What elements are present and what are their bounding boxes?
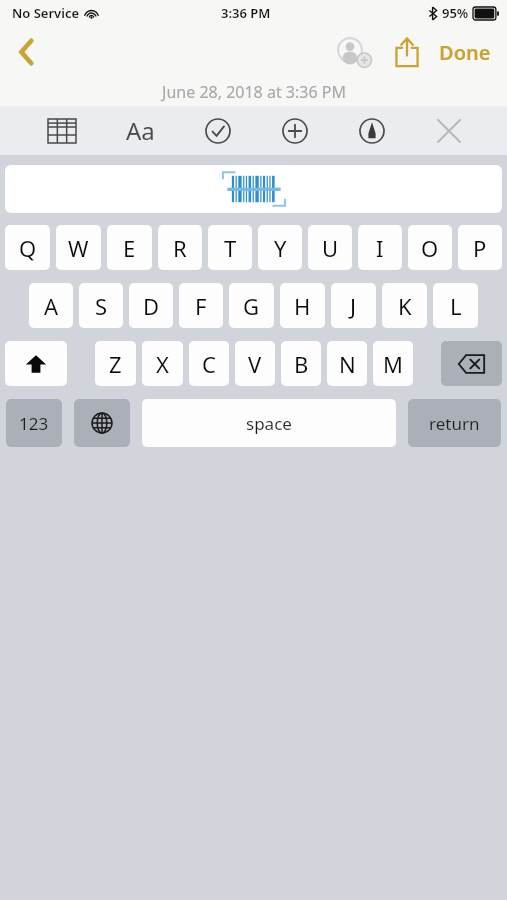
button[interactable]: O xyxy=(408,225,452,270)
button[interactable]: Y xyxy=(258,225,302,270)
button[interactable]: F xyxy=(179,283,223,328)
staticText: N xyxy=(339,349,356,379)
staticText: X xyxy=(156,349,169,379)
button[interactable]: B xyxy=(281,341,321,386)
button[interactable]: W xyxy=(56,225,101,270)
staticText: M xyxy=(383,349,403,379)
staticText: I xyxy=(376,233,384,263)
staticText: 123 xyxy=(19,412,49,435)
button[interactable]: Checklist xyxy=(196,106,240,155)
button[interactable]: Add People xyxy=(329,26,381,78)
button[interactable]: I xyxy=(358,225,402,270)
staticText: Q xyxy=(19,233,37,263)
button[interactable]: H xyxy=(280,283,325,328)
button[interactable]: Switch keyboard xyxy=(74,399,130,447)
staticText: Done xyxy=(439,39,491,66)
button[interactable]: T xyxy=(208,225,252,270)
button[interactable]: Text format xyxy=(118,106,162,155)
button[interactable]: C xyxy=(189,341,229,386)
staticText: G xyxy=(243,291,260,321)
staticText: Aa xyxy=(126,114,155,147)
button[interactable]: Numbers xyxy=(6,399,62,447)
staticText: B xyxy=(294,349,309,379)
staticText: R xyxy=(173,233,187,263)
staticText: A xyxy=(44,291,59,321)
button[interactable]: E xyxy=(107,225,152,270)
staticText: 3:36 PM xyxy=(221,4,271,22)
staticText: Y xyxy=(274,233,287,263)
button[interactable]: Done xyxy=(433,26,507,78)
staticText: No Service xyxy=(12,4,80,22)
button[interactable]: P xyxy=(458,225,502,270)
staticText: space xyxy=(246,412,292,435)
staticText: C xyxy=(202,349,216,379)
button[interactable]: G xyxy=(229,283,274,328)
staticText: K xyxy=(398,291,412,321)
staticText: W xyxy=(68,233,89,263)
staticText: return xyxy=(429,412,480,435)
staticText: H xyxy=(294,291,311,321)
button[interactable]: Q xyxy=(5,225,50,270)
staticText: U xyxy=(322,233,339,263)
staticText: O xyxy=(421,233,439,263)
button[interactable]: space xyxy=(142,399,396,447)
staticText: S xyxy=(95,291,108,321)
button[interactable]: L xyxy=(433,283,478,328)
staticText: T xyxy=(224,233,237,263)
button[interactable]: S xyxy=(79,283,123,328)
button[interactable]: Share xyxy=(381,26,433,78)
button[interactable]: Add attachment xyxy=(273,106,317,155)
button[interactable]: A xyxy=(29,283,73,328)
staticText: P xyxy=(473,233,487,263)
button[interactable]: Scan barcode xyxy=(5,165,502,213)
staticText: June 28, 2018 at 3:36 PM xyxy=(162,81,346,103)
button[interactable]: Shift xyxy=(5,341,67,386)
button[interactable]: X xyxy=(142,341,183,386)
staticText: V xyxy=(248,349,262,379)
button[interactable]: R xyxy=(158,225,202,270)
button[interactable]: Z xyxy=(95,341,136,386)
staticText: E xyxy=(123,233,136,263)
button[interactable]: Dismiss keyboard xyxy=(427,106,471,155)
button[interactable]: K xyxy=(382,283,427,328)
button[interactable]: U xyxy=(308,225,352,270)
staticText: D xyxy=(143,291,160,321)
button[interactable]: J xyxy=(331,283,376,328)
staticText: F xyxy=(195,291,207,321)
button[interactable]: Table xyxy=(40,106,84,155)
button[interactable]: Markup xyxy=(350,106,394,155)
staticText: L xyxy=(450,291,462,321)
staticText: Z xyxy=(109,349,122,379)
button[interactable]: Back xyxy=(0,26,52,78)
button[interactable]: return xyxy=(408,399,501,447)
staticText: J xyxy=(350,291,357,321)
button[interactable]: M xyxy=(373,341,413,386)
staticText: 95% xyxy=(442,4,469,22)
button[interactable]: Backspace xyxy=(441,341,502,386)
button[interactable]: V xyxy=(235,341,275,386)
button[interactable]: N xyxy=(327,341,367,386)
button[interactable]: D xyxy=(129,283,173,328)
